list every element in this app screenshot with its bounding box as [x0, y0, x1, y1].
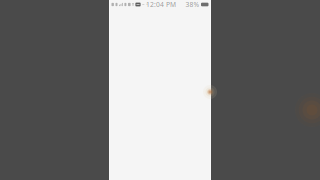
button[interactable]: Notifications	[109, 0, 148, 9]
button[interactable]: Battery 38 percent	[186, 0, 211, 9]
staticText: 12:04 PM	[146, 0, 176, 9]
staticText: 38%	[186, 0, 200, 9]
